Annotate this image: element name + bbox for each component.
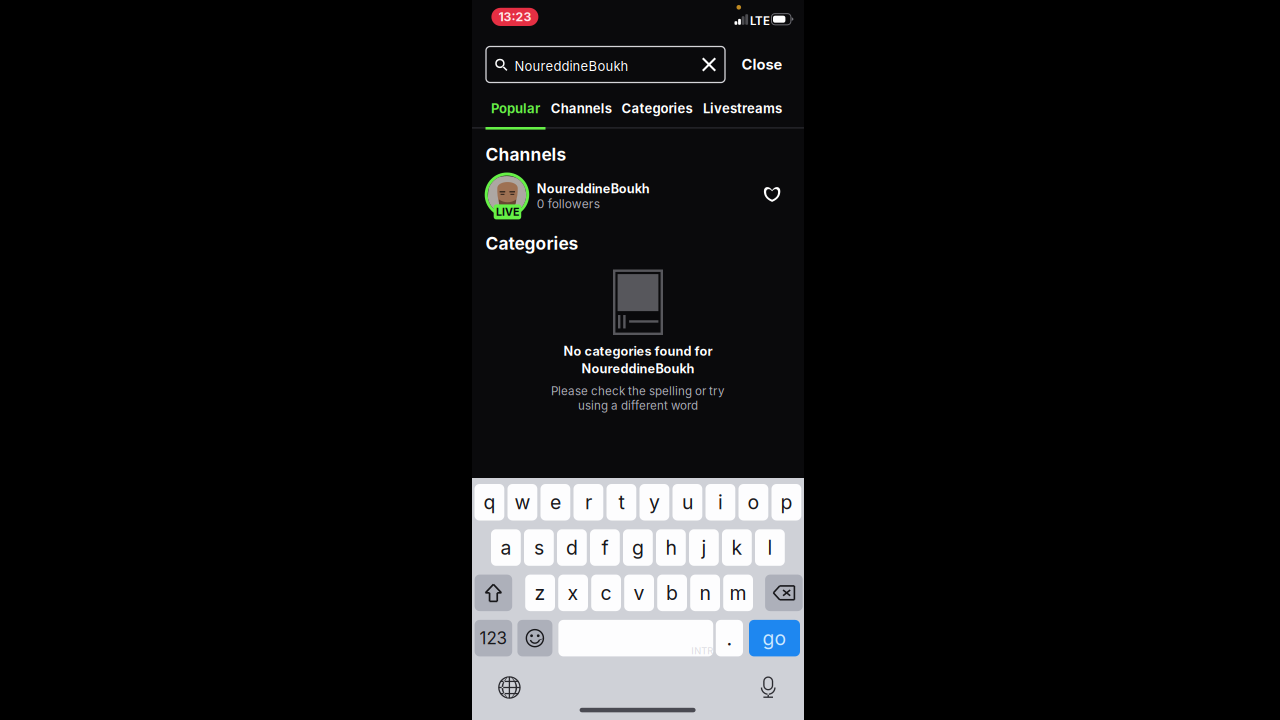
staticText: using a different word bbox=[578, 398, 698, 412]
button[interactable]: z bbox=[525, 575, 555, 611]
button[interactable]: p bbox=[771, 484, 801, 520]
staticText: 123 bbox=[479, 628, 507, 648]
button[interactable]: . bbox=[716, 620, 743, 656]
button[interactable]: space bbox=[558, 620, 713, 656]
button[interactable]: g bbox=[623, 529, 653, 566]
staticText: NoureddineBoukh bbox=[581, 361, 694, 376]
button[interactable]: l bbox=[755, 529, 785, 566]
staticText: Channels bbox=[551, 101, 612, 116]
button[interactable]: j bbox=[689, 529, 719, 566]
button[interactable]: 123 bbox=[475, 620, 512, 656]
button[interactable]: Shift bbox=[475, 575, 512, 611]
staticText: Popular bbox=[491, 101, 540, 116]
staticText: No categories found for bbox=[563, 343, 712, 359]
staticText: f bbox=[601, 536, 608, 559]
button[interactable]: d bbox=[557, 529, 587, 566]
button[interactable]: s bbox=[524, 529, 554, 566]
button[interactable]: m bbox=[723, 575, 753, 611]
staticText: t bbox=[618, 490, 624, 514]
staticText: r bbox=[585, 490, 592, 514]
button[interactable]: a bbox=[491, 529, 521, 566]
staticText: g bbox=[632, 536, 644, 559]
staticText: 0 followers bbox=[537, 196, 600, 211]
staticText: 13:23 bbox=[498, 9, 531, 24]
button[interactable]: c bbox=[591, 575, 621, 611]
button[interactable]: o bbox=[738, 484, 768, 520]
button[interactable]: Clear search bbox=[692, 46, 726, 82]
button[interactable]: n bbox=[690, 575, 720, 611]
staticText: i bbox=[718, 490, 723, 514]
staticText: Livestreams bbox=[703, 101, 782, 116]
button[interactable]: y bbox=[639, 484, 669, 520]
staticText: INTR bbox=[691, 645, 713, 656]
button[interactable]: Channels bbox=[546, 93, 617, 123]
button[interactable]: b bbox=[657, 575, 687, 611]
staticText: Please check the spelling or try bbox=[551, 384, 725, 398]
staticText: o bbox=[747, 490, 759, 514]
staticText: NoureddineBoukh bbox=[514, 58, 628, 74]
button[interactable]: Follow bbox=[750, 172, 794, 216]
button[interactable]: h bbox=[656, 529, 686, 566]
staticText: x bbox=[568, 581, 579, 605]
button[interactable]: Emoji bbox=[517, 620, 552, 656]
button[interactable]: w bbox=[507, 484, 537, 520]
staticText: n bbox=[700, 581, 711, 605]
staticText: Close bbox=[741, 56, 782, 73]
staticText: b bbox=[666, 581, 678, 605]
button[interactable]: Categories bbox=[616, 93, 697, 123]
staticText: q bbox=[483, 490, 495, 514]
button[interactable]: u bbox=[672, 484, 702, 520]
staticText: v bbox=[634, 581, 645, 605]
staticText: Categories bbox=[485, 233, 578, 254]
button[interactable]: e bbox=[540, 484, 570, 520]
staticText: . bbox=[726, 626, 732, 650]
staticText: m bbox=[730, 581, 747, 605]
staticText: Channels bbox=[485, 144, 566, 165]
staticText: NoureddineBoukh bbox=[537, 181, 650, 196]
button[interactable]: Delete bbox=[765, 575, 803, 611]
button[interactable]: Livestreams bbox=[697, 93, 788, 123]
staticText: y bbox=[649, 490, 660, 514]
staticText: p bbox=[780, 490, 792, 514]
button[interactable]: r bbox=[573, 484, 603, 520]
staticText: w bbox=[514, 490, 530, 514]
button[interactable]: q bbox=[474, 484, 504, 520]
button[interactable]: Dictation bbox=[747, 670, 789, 704]
button[interactable]: Close bbox=[734, 46, 790, 82]
button[interactable]: go bbox=[749, 620, 800, 656]
button[interactable]: Popular bbox=[484, 93, 546, 123]
staticText: go bbox=[762, 626, 786, 650]
button[interactable]: v bbox=[624, 575, 654, 611]
staticText: l bbox=[767, 536, 772, 559]
staticText: LIVE bbox=[496, 205, 519, 218]
button[interactable]: k bbox=[722, 529, 752, 566]
button[interactable]: t bbox=[606, 484, 636, 520]
staticText: z bbox=[535, 581, 546, 605]
button[interactable]: Next keyboard bbox=[488, 670, 530, 704]
button[interactable]: x bbox=[558, 575, 588, 611]
staticText: d bbox=[566, 536, 578, 559]
staticText: a bbox=[500, 536, 511, 559]
staticText: j bbox=[701, 536, 706, 559]
staticText: LTE bbox=[750, 14, 770, 28]
button[interactable]: i bbox=[705, 484, 735, 520]
button[interactable]: LIVE bbox=[472, 172, 747, 224]
staticText: h bbox=[665, 536, 676, 559]
staticText: c bbox=[601, 581, 612, 605]
staticText: e bbox=[550, 490, 561, 514]
staticText: Categories bbox=[621, 101, 692, 116]
staticText: k bbox=[731, 536, 742, 559]
button[interactable]: f bbox=[590, 529, 620, 566]
staticText: s bbox=[534, 536, 544, 559]
staticText: u bbox=[682, 490, 693, 514]
